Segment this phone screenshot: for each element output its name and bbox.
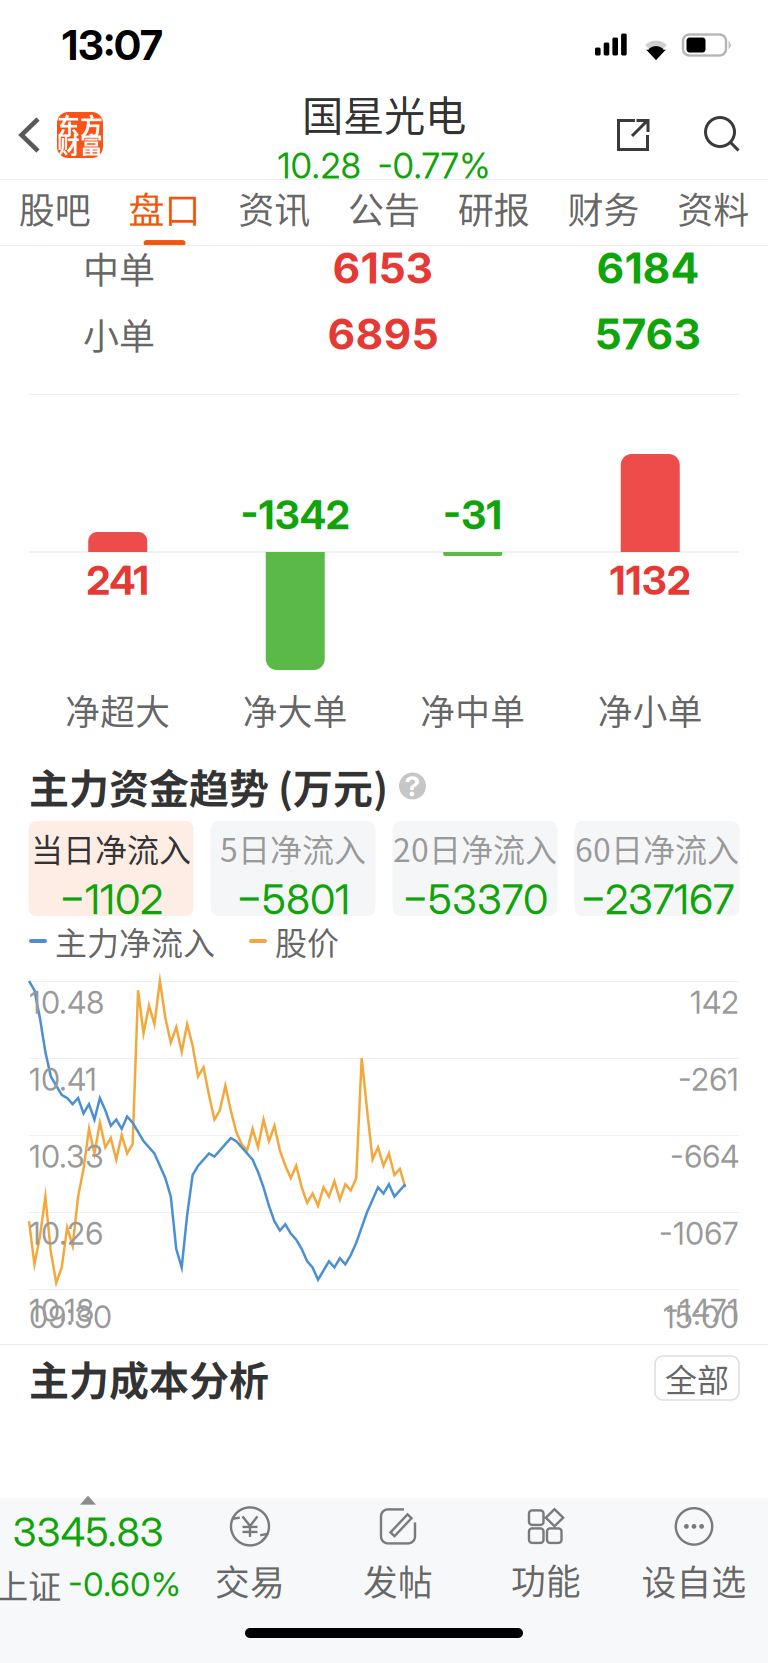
staticText: 净中单 bbox=[420, 685, 525, 735]
button[interactable]: 公告 bbox=[329, 180, 439, 245]
staticText: −237167 bbox=[580, 874, 734, 924]
staticText: 主力资金趋势 (万元) bbox=[29, 757, 388, 815]
staticText: 当日净流入 bbox=[31, 825, 191, 871]
staticText: 13:07 bbox=[62, 20, 163, 70]
staticText: -1471 bbox=[665, 1292, 739, 1329]
staticText: 6184 bbox=[596, 242, 699, 294]
staticText: 资料 bbox=[677, 182, 749, 234]
staticText: 10.33 bbox=[29, 1138, 104, 1175]
button[interactable]: 5日净流入 bbox=[210, 821, 375, 916]
staticText: 09:30 bbox=[29, 1298, 112, 1335]
staticText: 142 bbox=[690, 984, 739, 1021]
staticText: 241 bbox=[86, 556, 149, 604]
button[interactable]: 当日净流入 bbox=[28, 821, 193, 916]
staticText: 20日净流入 bbox=[393, 825, 557, 871]
staticText: -1067 bbox=[659, 1215, 739, 1252]
button[interactable]: 发帖 bbox=[324, 1498, 472, 1602]
staticText: 15:00 bbox=[663, 1298, 739, 1335]
staticText: 3345.83 bbox=[12, 1508, 163, 1556]
staticText: 净超大 bbox=[65, 685, 170, 735]
staticText: 中单 bbox=[83, 242, 155, 294]
staticText: 5日净流入 bbox=[220, 825, 366, 871]
button[interactable]: 资料 bbox=[658, 180, 768, 245]
staticText: 1132 bbox=[610, 556, 691, 604]
staticText: 上证 bbox=[0, 1560, 61, 1608]
button[interactable]: 研报 bbox=[439, 180, 549, 245]
staticText: 6153 bbox=[332, 242, 433, 294]
staticText: −5801 bbox=[236, 874, 350, 924]
staticText: 交易 bbox=[215, 1555, 285, 1606]
staticText: 主力净流入 bbox=[55, 918, 215, 964]
staticText: 发帖 bbox=[363, 1555, 433, 1606]
button[interactable]: Share bbox=[596, 99, 670, 171]
button[interactable]: 功能 bbox=[472, 1498, 620, 1602]
staticText: 财富 bbox=[57, 127, 103, 160]
staticText: 主力成本分析 bbox=[29, 1349, 269, 1407]
staticText: ? bbox=[404, 769, 420, 803]
button[interactable]: 20日净流入 bbox=[392, 821, 557, 916]
button[interactable]: 设自选 bbox=[620, 1498, 768, 1602]
button[interactable]: 盘口 bbox=[110, 180, 219, 245]
staticText: 6895 bbox=[327, 308, 438, 360]
staticText: -664 bbox=[670, 1138, 739, 1175]
staticText: −1102 bbox=[59, 874, 163, 924]
staticText: 全部 bbox=[665, 1355, 729, 1401]
staticText: 东方 bbox=[57, 108, 103, 141]
button[interactable]: 股吧 bbox=[0, 180, 110, 245]
staticText: -0.77% bbox=[377, 145, 490, 187]
staticText: 股价 bbox=[275, 918, 339, 964]
staticText: 10.28 bbox=[277, 145, 361, 187]
staticText: -261 bbox=[678, 1061, 739, 1098]
button[interactable]: 东方财富 bbox=[57, 112, 103, 158]
staticText: 60日净流入 bbox=[575, 825, 739, 871]
staticText: 研报 bbox=[458, 182, 530, 234]
button[interactable]: 60日净流入 bbox=[574, 821, 739, 916]
staticText: 10.26 bbox=[29, 1215, 103, 1252]
button[interactable]: 财务 bbox=[549, 180, 658, 245]
staticText: 资讯 bbox=[238, 182, 310, 234]
staticText: 股吧 bbox=[19, 182, 91, 234]
button[interactable]: Back bbox=[0, 99, 57, 171]
staticText: 10.48 bbox=[29, 984, 104, 1021]
staticText: 功能 bbox=[511, 1554, 581, 1605]
button[interactable]: 交易 bbox=[176, 1498, 324, 1602]
staticText: -0.60% bbox=[68, 1564, 181, 1604]
staticText: -1342 bbox=[241, 491, 350, 539]
staticText: -31 bbox=[443, 491, 502, 539]
button[interactable]: 上证指数 3345.83 bbox=[0, 1498, 176, 1602]
staticText: 10.41 bbox=[29, 1061, 97, 1098]
staticText: 设自选 bbox=[641, 1555, 746, 1606]
staticText: 盘口 bbox=[129, 182, 201, 234]
staticText: 财务 bbox=[567, 182, 639, 234]
staticText: 小单 bbox=[83, 308, 155, 360]
staticText: 净大单 bbox=[243, 685, 348, 735]
staticText: 公告 bbox=[348, 182, 420, 234]
staticText: 净小单 bbox=[598, 685, 703, 735]
staticText: 国星光电 bbox=[302, 83, 466, 143]
button[interactable]: 资讯 bbox=[219, 180, 329, 245]
staticText: 5763 bbox=[594, 308, 701, 360]
staticText: 10.18 bbox=[29, 1292, 94, 1329]
button[interactable]: Search bbox=[690, 99, 754, 171]
staticText: −53370 bbox=[402, 874, 548, 924]
